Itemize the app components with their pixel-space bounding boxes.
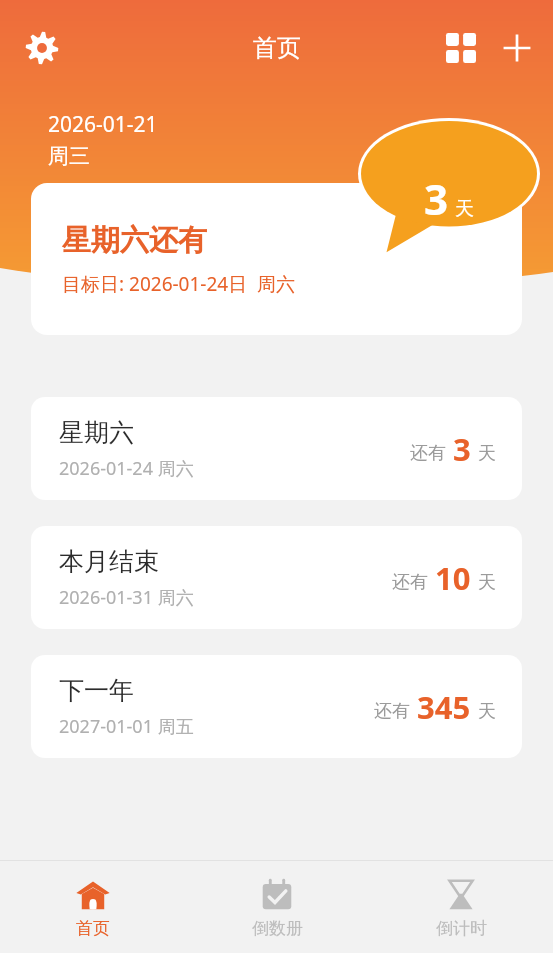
staticText: 3: [453, 428, 471, 470]
staticText: 天: [478, 442, 496, 465]
staticText: 天: [455, 197, 474, 221]
staticText: 10: [435, 557, 471, 599]
button[interactable]: Settings: [14, 20, 70, 76]
staticText: 倒计时: [436, 918, 487, 939]
button[interactable]: 倒计时: [369, 861, 553, 953]
button[interactable]: 倒数册: [185, 861, 369, 953]
staticText: 3: [424, 170, 449, 227]
staticText: 345: [417, 686, 471, 728]
button[interactable]: 下一年: [31, 655, 522, 758]
staticText: 周三: [48, 143, 90, 169]
button[interactable]: Grid view: [433, 20, 489, 76]
staticText: 首页: [253, 33, 301, 63]
staticText: 2027-01-01 周五: [59, 714, 194, 739]
staticText: 下一年: [59, 675, 134, 706]
staticText: 2026-01-21: [48, 110, 158, 139]
staticText: 目标日: 2026-01-24日 周六: [62, 271, 296, 297]
staticText: 星期六还有: [62, 222, 207, 259]
staticText: 还有: [374, 700, 410, 723]
button[interactable]: 星期六还有: [31, 183, 522, 335]
button[interactable]: 星期六: [31, 397, 522, 500]
staticText: 倒数册: [252, 918, 303, 939]
button[interactable]: 本月结束: [31, 526, 522, 629]
button[interactable]: 首页: [0, 861, 185, 953]
staticText: 2026-01-31 周六: [59, 585, 194, 610]
staticText: 本月结束: [59, 546, 159, 577]
staticText: 天: [478, 571, 496, 594]
staticText: 天: [478, 700, 496, 723]
staticText: 还有: [392, 571, 428, 594]
staticText: 星期六: [59, 417, 134, 448]
staticText: 首页: [76, 918, 110, 939]
button[interactable]: Add: [489, 20, 545, 76]
staticText: 还有: [410, 442, 446, 465]
staticText: 2026-01-24 周六: [59, 456, 194, 481]
